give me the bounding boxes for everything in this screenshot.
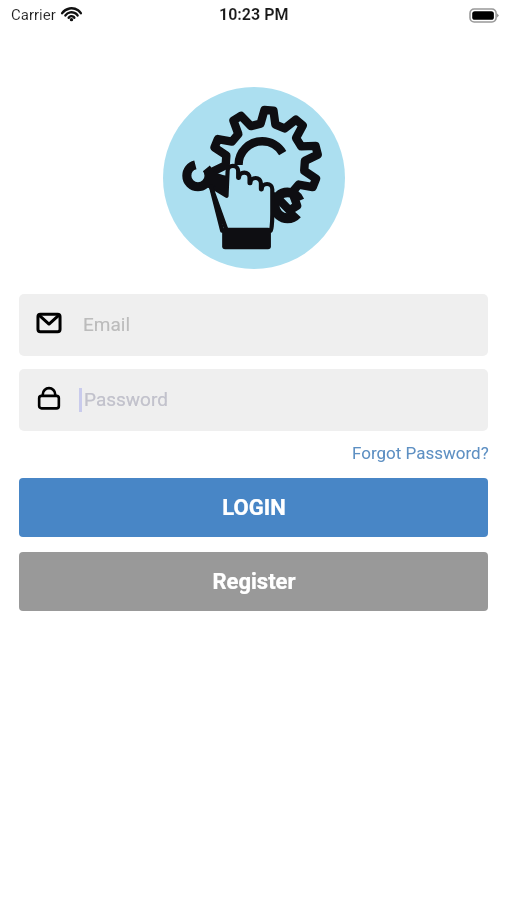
button[interactable]: LOGIN [19,478,488,537]
button[interactable]: Email [19,294,488,356]
staticText: Carrier [11,6,56,24]
staticText: Register [212,569,296,595]
button[interactable]: Forgot Password? [352,441,507,465]
button[interactable]: Register [19,552,488,611]
staticText: 10:23 PM [219,5,289,24]
staticText: LOGIN [222,495,286,521]
staticText: Email [83,313,131,335]
other: App logo [163,87,345,269]
staticText: Forgot Password? [352,443,489,463]
staticText: Password [84,388,168,410]
button[interactable]: Password [19,369,488,431]
